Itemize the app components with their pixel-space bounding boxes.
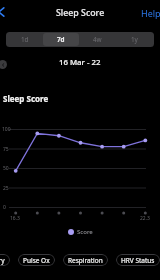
staticText: Sleep Score (3, 93, 49, 104)
button[interactable]: Recovery (0, 254, 10, 266)
button[interactable]: Previous week (0, 60, 7, 69)
staticText: Pulse Ox (23, 256, 50, 265)
staticText: Recovery (0, 256, 5, 265)
staticText: 75 (3, 146, 9, 153)
button[interactable]: 1y (116, 33, 153, 46)
staticText: HRV Status (121, 256, 155, 265)
button[interactable]: Back (0, 2, 10, 22)
staticText: 16 Mar - 22 (59, 57, 101, 68)
staticText: 22.3 (140, 215, 150, 222)
staticText: Score (77, 228, 93, 236)
staticText: Respiration (68, 256, 103, 265)
staticText: 25 (3, 185, 9, 192)
button[interactable]: Pulse Ox (18, 254, 55, 266)
staticText: 4w (93, 35, 102, 44)
button[interactable]: HRV Status (116, 254, 160, 266)
staticText: 50 (3, 165, 9, 172)
button[interactable]: Help (141, 4, 160, 22)
button[interactable]: 7d (43, 33, 79, 46)
staticText: 1y (131, 35, 138, 44)
staticText: Help (141, 7, 160, 19)
staticText: 7d (57, 35, 65, 44)
button[interactable]: Respiration (63, 254, 108, 266)
staticText: Sleep Score (56, 7, 105, 19)
staticText: 0 (3, 204, 6, 211)
button[interactable]: 1d (7, 33, 43, 46)
staticText: 1d (21, 35, 29, 44)
button[interactable]: 4w (79, 33, 116, 46)
staticText: 100 (2, 126, 11, 133)
staticText: 16.3 (10, 215, 20, 222)
